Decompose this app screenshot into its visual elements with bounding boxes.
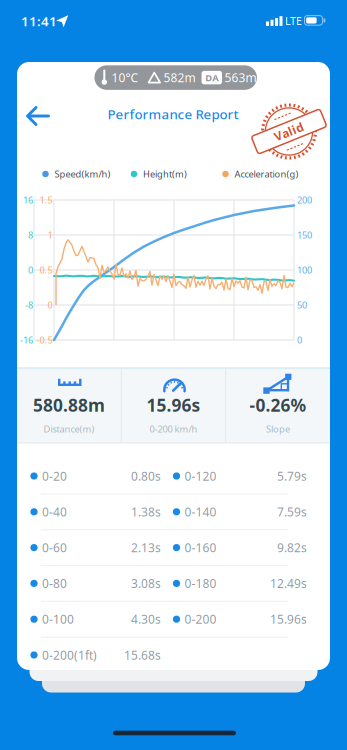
staticText: 0-60 [42,540,67,555]
staticText: 0-100 [42,611,74,627]
staticText: 100 [297,264,312,276]
staticText: 200 [297,194,312,206]
staticText: 0-80 [42,575,67,591]
staticText: 16 [23,194,33,206]
staticText: 1 [47,229,52,241]
staticText: 50 [297,299,307,311]
staticText: Valid [273,123,304,139]
staticText: 0-160 [184,540,216,555]
staticText: 2.13s [131,540,161,555]
staticText: Distance(m) [43,423,94,435]
staticText: -8 [25,299,33,311]
staticText: 150 [297,229,312,241]
staticText: Performance Report [107,105,238,123]
staticText: 580.88m [33,393,105,416]
staticText: 1.38s [131,504,161,520]
staticText: 0-20 [42,468,67,484]
staticText: 10°C [111,70,138,85]
staticText: -0.5 [36,334,52,346]
staticText: 4.30s [131,611,161,627]
staticText: -0.26% [249,393,306,416]
staticText: 0-40 [42,504,67,520]
staticText: LTE [285,14,302,28]
button[interactable]: Back [26,106,50,126]
staticText: 0 [297,334,302,346]
staticText: 9.82s [277,540,307,555]
staticText: Acceleration(g) [234,168,298,180]
staticText: 0 [47,299,52,311]
staticText: 7.59s [277,504,307,520]
staticText: 12.49s [270,575,307,591]
staticText: Slope [266,423,290,435]
staticText: 0.80s [131,468,161,484]
staticText: -16 [20,334,33,346]
staticText: 1.5 [39,194,52,206]
staticText: 5.79s [277,468,307,484]
staticText: Speed(km/h) [54,168,110,180]
staticText: 11:41 [21,12,57,30]
staticText: 0 [28,264,33,276]
staticText: 3.08s [131,575,161,591]
staticText: 0-200 [184,611,216,627]
staticText: 0-200(1ft) [42,647,97,663]
staticText: 0-200 km/h [149,423,197,435]
staticText: 15.68s [124,647,161,663]
staticText: 563m [224,70,256,85]
staticText: 0-140 [184,504,216,520]
staticText: DA [205,71,218,84]
staticText: 0-180 [184,575,216,591]
staticText: Height(m) [143,168,187,180]
staticText: 582m [163,70,195,85]
staticText: 0-120 [184,468,216,484]
staticText: 15.96s [146,393,200,416]
staticText: 15.96s [270,611,307,627]
staticText: 0.5 [39,264,52,276]
staticText: 8 [28,229,33,241]
